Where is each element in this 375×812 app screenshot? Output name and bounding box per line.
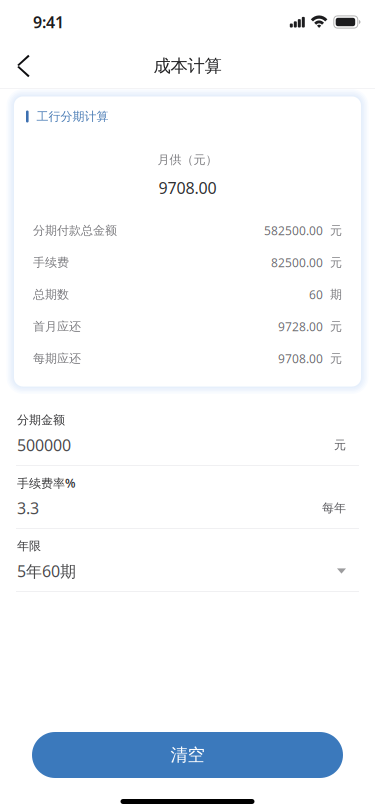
staticText: 每年 xyxy=(322,501,346,515)
staticText: 成本计算 xyxy=(153,55,221,77)
staticText: 9:41 xyxy=(33,11,64,33)
staticText: 9728.00 xyxy=(278,318,323,334)
button[interactable]: 清空 xyxy=(32,732,343,778)
button[interactable]: 分期金额 xyxy=(0,403,375,465)
staticText: 9708.00 xyxy=(278,350,323,366)
staticText: 首月应还 xyxy=(33,319,81,334)
staticText: 分期付款总金额 xyxy=(33,223,117,238)
staticText: 总期数 xyxy=(33,287,69,302)
staticText: 元 xyxy=(330,223,342,238)
staticText: 元 xyxy=(330,319,342,334)
staticText: 月供（元） xyxy=(157,152,217,167)
staticText: 每期应还 xyxy=(33,351,81,366)
button[interactable]: 手续费率% xyxy=(0,466,375,528)
staticText: 5年60期 xyxy=(17,560,76,582)
staticText: 期 xyxy=(330,287,342,302)
staticText: 分期金额 xyxy=(17,413,65,427)
staticText: 500000 xyxy=(17,434,71,456)
staticText: 元 xyxy=(334,438,346,452)
staticText: 9708.00 xyxy=(158,177,216,198)
staticText: 82500.00 xyxy=(271,254,323,270)
staticText: 年限 xyxy=(17,539,41,553)
button[interactable]: Back xyxy=(0,44,44,88)
staticText: 60 xyxy=(309,286,323,302)
staticText: 3.3 xyxy=(17,497,39,519)
staticText: 手续费率% xyxy=(17,475,76,491)
staticText: 元 xyxy=(330,351,342,366)
staticText: 582500.00 xyxy=(264,222,323,238)
staticText: 手续费 xyxy=(33,255,69,270)
staticText: 工行分期计算 xyxy=(37,109,109,124)
staticText: 元 xyxy=(330,255,342,270)
button[interactable]: 年限 xyxy=(0,529,375,591)
staticText: 清空 xyxy=(170,744,204,766)
